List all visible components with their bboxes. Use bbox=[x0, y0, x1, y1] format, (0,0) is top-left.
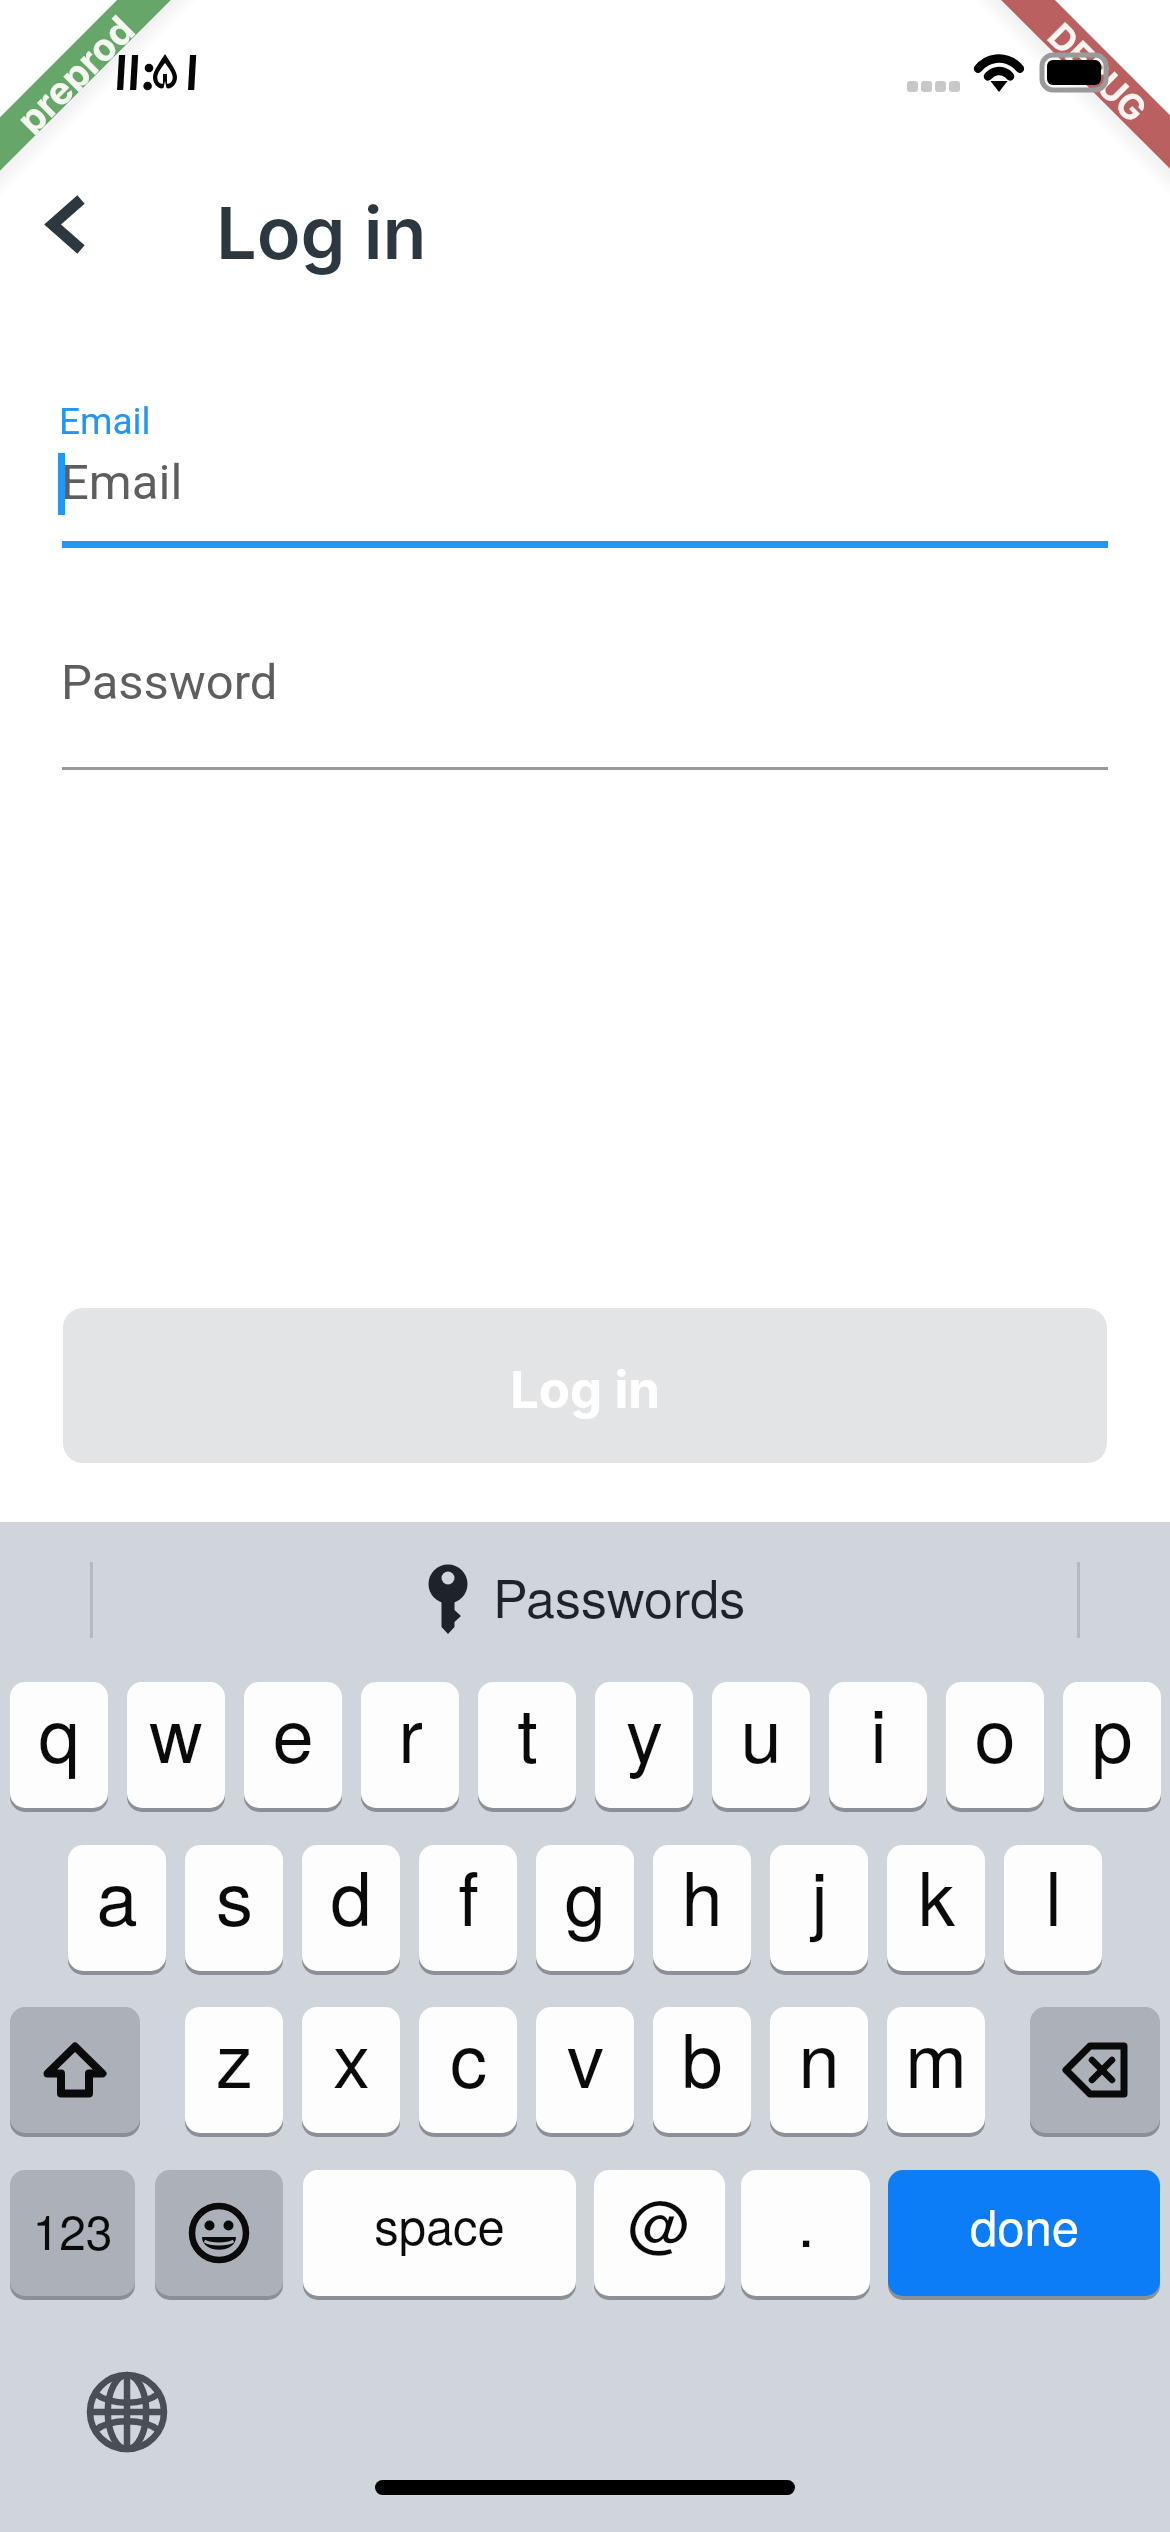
staticText: d bbox=[330, 1845, 372, 1947]
button[interactable]: Passwords autofill suggestion bbox=[420, 1545, 750, 1653]
button[interactable]: d bbox=[302, 1845, 400, 1971]
button[interactable]: n bbox=[770, 2007, 868, 2133]
button[interactable]: u bbox=[712, 1682, 810, 1808]
button[interactable]: space bbox=[303, 2170, 576, 2296]
button[interactable]: r bbox=[361, 1682, 459, 1808]
button[interactable]: @ bbox=[594, 2170, 725, 2296]
staticText: g bbox=[564, 1845, 606, 1947]
staticText: Email bbox=[59, 400, 151, 443]
button[interactable]: j bbox=[770, 1845, 868, 1971]
button[interactable]: c bbox=[419, 2007, 517, 2133]
button[interactable]: s bbox=[185, 1845, 283, 1971]
staticText: t bbox=[517, 1682, 538, 1784]
button[interactable]: . bbox=[741, 2170, 870, 2296]
button[interactable]: p bbox=[1063, 1682, 1161, 1808]
button[interactable]: q bbox=[10, 1682, 108, 1808]
button[interactable]: Email bbox=[62, 392, 1108, 548]
button[interactable]: h bbox=[653, 1845, 751, 1971]
button[interactable]: k bbox=[887, 1845, 985, 1971]
button[interactable]: Shift bbox=[10, 2007, 140, 2133]
staticText: p bbox=[1091, 1682, 1133, 1784]
button[interactable]: f bbox=[419, 1845, 517, 1971]
button[interactable]: Emoji bbox=[155, 2170, 283, 2296]
button[interactable]: l bbox=[1004, 1845, 1102, 1971]
staticText: Password bbox=[61, 654, 278, 711]
staticText: v bbox=[567, 2007, 604, 2109]
staticText: Log in bbox=[510, 1359, 660, 1421]
button[interactable]: Build flavour preprod bbox=[0, 0, 241, 241]
staticText: b bbox=[681, 2007, 723, 2109]
staticText: x bbox=[333, 2007, 370, 2109]
button[interactable]: e bbox=[244, 1682, 342, 1808]
staticText: q bbox=[38, 1682, 80, 1784]
button[interactable]: x bbox=[302, 2007, 400, 2133]
button[interactable]: z bbox=[185, 2007, 283, 2133]
staticText: y bbox=[626, 1682, 663, 1784]
button[interactable]: t bbox=[478, 1682, 576, 1808]
staticText: m bbox=[905, 2007, 967, 2109]
button[interactable]: a bbox=[68, 1845, 166, 1971]
button[interactable]: b bbox=[653, 2007, 751, 2133]
button[interactable]: done bbox=[888, 2170, 1160, 2296]
button[interactable]: v bbox=[536, 2007, 634, 2133]
button[interactable]: Back bbox=[16, 168, 128, 290]
staticText: h bbox=[681, 1845, 723, 1947]
staticText: z bbox=[216, 2007, 253, 2109]
staticText: space bbox=[374, 2189, 505, 2259]
button[interactable]: w bbox=[127, 1682, 225, 1808]
staticText: n bbox=[798, 2007, 840, 2109]
staticText: w bbox=[149, 1682, 203, 1784]
staticText: DEBUG bbox=[1042, 14, 1155, 127]
staticText: 123 bbox=[32, 2195, 113, 2264]
button[interactable]: Backspace bbox=[1030, 2007, 1160, 2133]
button[interactable]: m bbox=[887, 2007, 985, 2133]
staticText: l bbox=[1045, 1845, 1062, 1947]
staticText: c bbox=[450, 2007, 487, 2109]
button[interactable]: 123 bbox=[10, 2170, 135, 2296]
staticText: a bbox=[96, 1845, 138, 1947]
staticText: f bbox=[458, 1845, 479, 1947]
staticText: i bbox=[870, 1682, 887, 1784]
button[interactable]: Password bbox=[62, 620, 1108, 770]
staticText: preprod bbox=[7, 6, 138, 137]
button[interactable]: g bbox=[536, 1845, 634, 1971]
staticText: Passwords bbox=[493, 1558, 746, 1632]
staticText: Email bbox=[61, 454, 183, 511]
staticText: u bbox=[740, 1682, 782, 1784]
staticText: Log in bbox=[216, 189, 427, 276]
button[interactable]: o bbox=[946, 1682, 1044, 1808]
staticText: s bbox=[216, 1845, 253, 1947]
button[interactable]: y bbox=[595, 1682, 693, 1808]
button[interactable]: Change keyboard bbox=[81, 2366, 173, 2458]
button[interactable]: i bbox=[829, 1682, 927, 1808]
staticText: @ bbox=[628, 2176, 691, 2265]
staticText: . bbox=[797, 2176, 815, 2265]
staticText: done bbox=[970, 2190, 1079, 2260]
staticText: j bbox=[811, 1845, 828, 1947]
button[interactable]: Log in bbox=[63, 1308, 1107, 1463]
staticText: e bbox=[272, 1682, 314, 1784]
staticText: o bbox=[974, 1682, 1016, 1784]
button[interactable]: Debug banner bbox=[930, 0, 1170, 240]
staticText: k bbox=[918, 1845, 955, 1947]
staticText: r bbox=[398, 1682, 423, 1784]
